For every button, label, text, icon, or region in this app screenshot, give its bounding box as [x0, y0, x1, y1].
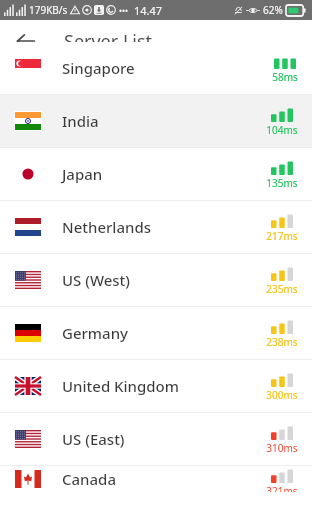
button[interactable]: US (East) [0, 413, 312, 465]
staticText: 321ms [266, 484, 298, 492]
staticText: US (West) [62, 270, 131, 290]
button[interactable]: India [0, 95, 312, 147]
staticText: 179KB/s [29, 3, 68, 17]
button[interactable]: United Kingdom [0, 360, 312, 412]
staticText: 104ms [266, 123, 298, 137]
staticText: Server List [64, 29, 153, 54]
staticText: Japan [62, 164, 103, 184]
staticText: US (East) [62, 429, 125, 449]
staticText: 300ms [266, 388, 298, 402]
button[interactable]: Germany [0, 307, 312, 359]
staticText: Canada [62, 469, 116, 489]
staticText: 135ms [266, 176, 298, 190]
staticText: 238ms [266, 335, 298, 349]
staticText: 235ms [266, 282, 298, 296]
staticText: Singapore [62, 58, 135, 78]
staticText: India [62, 111, 99, 131]
staticText: 62% [263, 3, 283, 17]
staticText: ••• [119, 5, 129, 16]
button[interactable]: Singapore [0, 42, 312, 94]
staticText: 58ms [272, 70, 298, 84]
button[interactable]: Back [11, 26, 41, 56]
staticText: Germany [62, 323, 128, 343]
staticText: 217ms [266, 229, 298, 243]
button[interactable]: US (West) [0, 254, 312, 306]
button[interactable]: Japan [0, 148, 312, 200]
staticText: 14.47 [134, 3, 163, 18]
button[interactable]: Netherlands [0, 201, 312, 253]
staticText: Netherlands [62, 217, 151, 237]
staticText: 310ms [266, 441, 298, 455]
button[interactable]: Canada [0, 466, 312, 492]
staticText: United Kingdom [62, 376, 179, 396]
